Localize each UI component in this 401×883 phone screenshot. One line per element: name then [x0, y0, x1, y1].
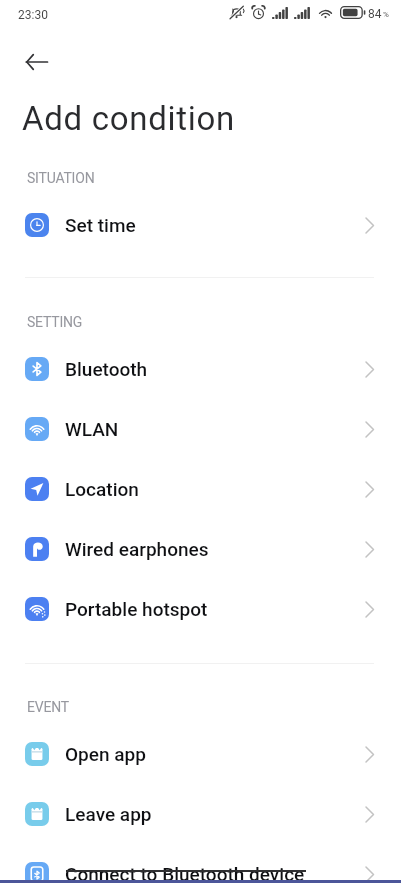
staticText: Bluetooth — [65, 358, 148, 380]
staticText: SITUATION — [27, 170, 95, 186]
staticText: Add condition — [22, 99, 235, 138]
staticText: 23:30 — [18, 8, 48, 22]
staticText: SETTING — [27, 314, 83, 330]
staticText: WLAN — [65, 418, 119, 440]
staticText: Wired earphones — [65, 538, 209, 560]
button[interactable]: WLAN — [0, 399, 401, 459]
button[interactable]: Leave app — [0, 784, 401, 844]
staticText: 84 — [368, 7, 382, 21]
staticText: Set time — [65, 214, 136, 236]
button[interactable]: Connect to Bluetooth device — [0, 844, 401, 883]
staticText: Leave app — [65, 803, 152, 825]
button[interactable]: Bluetooth — [0, 339, 401, 399]
staticText: EVENT — [27, 699, 69, 715]
staticText: % — [383, 10, 389, 19]
staticText: Portable hotspot — [65, 598, 208, 620]
button[interactable]: Portable hotspot — [0, 579, 401, 639]
button[interactable]: Wired earphones — [0, 519, 401, 579]
staticText: Location — [65, 478, 139, 500]
staticText: Open app — [65, 743, 146, 765]
button[interactable]: Back — [15, 41, 57, 83]
staticText: Connect to Bluetooth device — [65, 863, 305, 883]
button[interactable]: Open app — [0, 724, 401, 784]
button[interactable]: Location — [0, 459, 401, 519]
button[interactable]: Set time — [0, 195, 401, 255]
